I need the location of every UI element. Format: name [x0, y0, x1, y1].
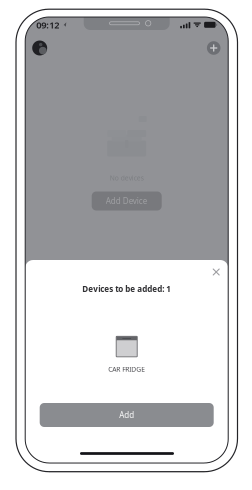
staticText: CAR FRIDGE	[108, 365, 145, 374]
staticText: No devices	[110, 174, 144, 182]
button[interactable]: Add	[40, 403, 214, 427]
button[interactable]: Close	[207, 263, 225, 281]
staticText: Devices to be added: 1	[82, 284, 171, 294]
staticText: Add Device	[106, 196, 148, 206]
button[interactable]: Add Device	[92, 191, 162, 210]
staticText: Add	[119, 410, 134, 420]
button[interactable]: Add device	[206, 40, 222, 56]
button[interactable]: Account	[32, 40, 48, 56]
staticText: 09:12	[36, 19, 59, 31]
